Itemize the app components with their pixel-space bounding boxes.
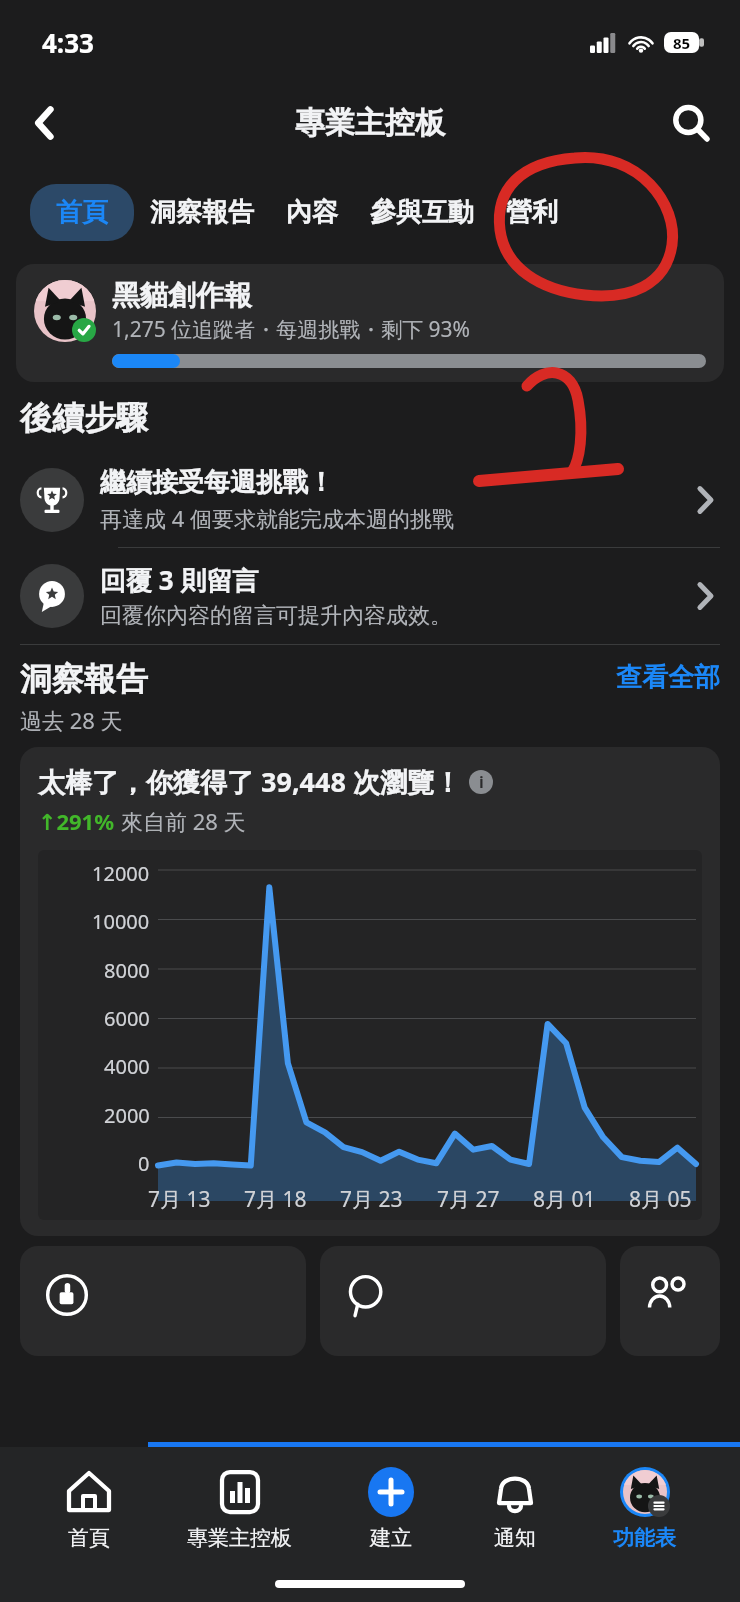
button[interactable]: Search xyxy=(660,92,722,154)
button[interactable] xyxy=(20,1246,306,1356)
staticText: 參與互動 xyxy=(370,196,474,229)
staticText: 回覆 3 則留言 xyxy=(100,562,259,598)
button[interactable]: Back xyxy=(14,92,76,154)
button[interactable]: 首頁 xyxy=(30,184,134,241)
button[interactable]: 建立 xyxy=(356,1463,426,1555)
staticText: 專業主控板 xyxy=(187,1525,292,1551)
staticText: 建立 xyxy=(370,1525,412,1551)
staticText: ↑291% xyxy=(38,806,115,836)
staticText: 2000 xyxy=(104,1102,150,1129)
staticText: 7月 23 xyxy=(340,1185,403,1214)
staticText: 專業主控板 xyxy=(295,104,445,142)
staticText: 85 xyxy=(673,33,691,53)
staticText: 黑貓創作報 xyxy=(112,278,252,313)
staticText: 洞察報告 xyxy=(150,196,254,229)
staticText: 通知 xyxy=(494,1525,536,1551)
button[interactable]: 參與互動 xyxy=(354,184,490,241)
staticText: 功能表 xyxy=(613,1525,676,1551)
button[interactable]: 功能表 xyxy=(603,1463,686,1555)
staticText: 過去 28 天 xyxy=(20,705,123,735)
staticText: 7月 13 xyxy=(148,1185,211,1214)
button[interactable]: Info xyxy=(469,770,493,794)
button[interactable]: 黑貓創作報 xyxy=(16,264,724,382)
button[interactable] xyxy=(320,1246,606,1356)
staticText: 7月 27 xyxy=(437,1185,500,1214)
button[interactable]: 通知 xyxy=(480,1463,550,1555)
button[interactable]: 營利 xyxy=(490,184,574,241)
staticText: 來自前 28 天 xyxy=(121,806,246,836)
button[interactable]: 洞察報告 xyxy=(134,184,270,241)
staticText: 12000 xyxy=(92,860,150,887)
staticText: 10000 xyxy=(92,908,150,935)
staticText: 4:33 xyxy=(42,25,94,60)
staticText: 營利 xyxy=(506,196,558,229)
staticText: 8月 05 xyxy=(629,1185,692,1214)
staticText: 6000 xyxy=(104,1005,150,1032)
button[interactable]: 內容 xyxy=(270,184,354,241)
staticText: 8000 xyxy=(104,957,150,984)
staticText: 洞察報告 xyxy=(20,659,148,699)
staticText: 查看全部 xyxy=(616,661,720,694)
staticText: 首頁 xyxy=(56,196,108,229)
staticText: 4000 xyxy=(104,1053,150,1080)
staticText: 7月 18 xyxy=(244,1185,307,1214)
staticText: 首頁 xyxy=(68,1525,110,1551)
button[interactable]: 專業主控板 xyxy=(177,1463,302,1555)
staticText: 內容 xyxy=(286,196,338,229)
staticText: 0 xyxy=(138,1150,150,1177)
staticText: 繼續接受每週挑戰！ xyxy=(100,466,334,499)
staticText: i xyxy=(479,771,484,793)
staticText: 回覆你內容的留言可提升內容成效。 xyxy=(100,602,452,630)
button[interactable] xyxy=(620,1246,720,1356)
staticText: 1,275 位追蹤者・每週挑戰・剩下 93% xyxy=(112,315,471,344)
button[interactable]: 首頁 xyxy=(54,1463,124,1555)
staticText: 後續步驟 xyxy=(20,398,148,438)
staticText: 太棒了，你獲得了 39,448 次瀏覽！ xyxy=(38,763,461,800)
button[interactable]: 查看全部 xyxy=(616,659,720,694)
button[interactable]: 回覆 3 則留言 xyxy=(0,548,740,644)
button[interactable]: 太棒了，你獲得了 39,448 次瀏覽！ xyxy=(20,747,720,1236)
button[interactable]: 繼續接受每週挑戰！ xyxy=(0,452,740,547)
staticText: 再達成 4 個要求就能完成本週的挑戰 xyxy=(100,503,455,533)
staticText: 8月 01 xyxy=(533,1185,596,1214)
